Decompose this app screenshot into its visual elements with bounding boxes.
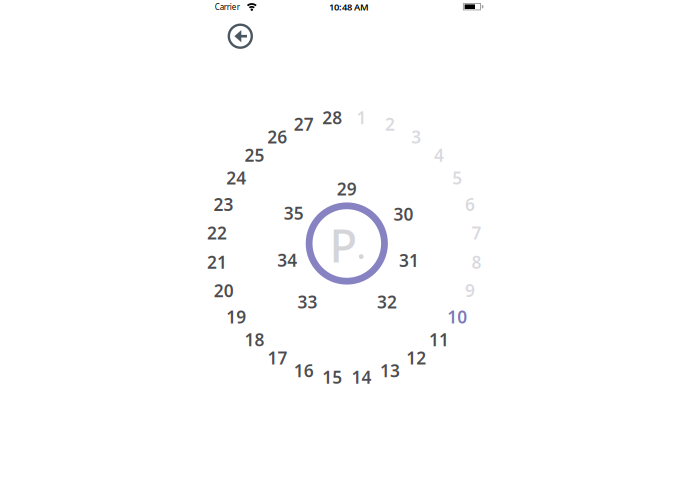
staticText: 27 bbox=[294, 113, 314, 136]
staticText: 24 bbox=[226, 166, 246, 189]
button[interactable]: Back bbox=[227, 23, 254, 50]
staticText: 18 bbox=[244, 328, 264, 351]
staticText: 3 bbox=[411, 125, 421, 148]
staticText: 7 bbox=[471, 221, 481, 244]
staticText: 33 bbox=[298, 290, 318, 313]
staticText: 29 bbox=[337, 177, 357, 200]
staticText: 19 bbox=[226, 305, 246, 328]
staticText: 20 bbox=[214, 279, 234, 302]
staticText: 30 bbox=[394, 202, 414, 225]
staticText: 1 bbox=[356, 106, 366, 129]
staticText: Carrier bbox=[215, 1, 240, 12]
staticText: 26 bbox=[267, 125, 287, 148]
staticText: 15 bbox=[322, 365, 342, 388]
staticText: 25 bbox=[244, 143, 264, 166]
staticText: 21 bbox=[207, 250, 227, 273]
staticText: 9 bbox=[465, 279, 475, 302]
staticText: 16 bbox=[294, 359, 314, 382]
staticText: 23 bbox=[214, 193, 234, 216]
staticText: 11 bbox=[429, 328, 449, 351]
staticText: 12 bbox=[406, 346, 426, 369]
staticText: 2 bbox=[385, 113, 395, 136]
staticText: 10:48 AM bbox=[329, 1, 369, 13]
staticText: 34 bbox=[277, 248, 297, 271]
staticText: 22 bbox=[207, 221, 227, 244]
staticText: 4 bbox=[434, 143, 444, 166]
staticText: 17 bbox=[267, 346, 287, 369]
staticText: 8 bbox=[471, 250, 481, 273]
staticText: 35 bbox=[284, 202, 304, 225]
staticText: 14 bbox=[351, 365, 371, 388]
staticText: 6 bbox=[465, 193, 475, 216]
staticText: 32 bbox=[377, 290, 397, 313]
staticText: 28 bbox=[322, 106, 342, 129]
staticText: 5 bbox=[452, 166, 462, 189]
staticText: 10 bbox=[447, 305, 467, 328]
staticText: 13 bbox=[380, 359, 400, 382]
staticText: 31 bbox=[399, 249, 419, 272]
staticText: P bbox=[330, 215, 358, 275]
